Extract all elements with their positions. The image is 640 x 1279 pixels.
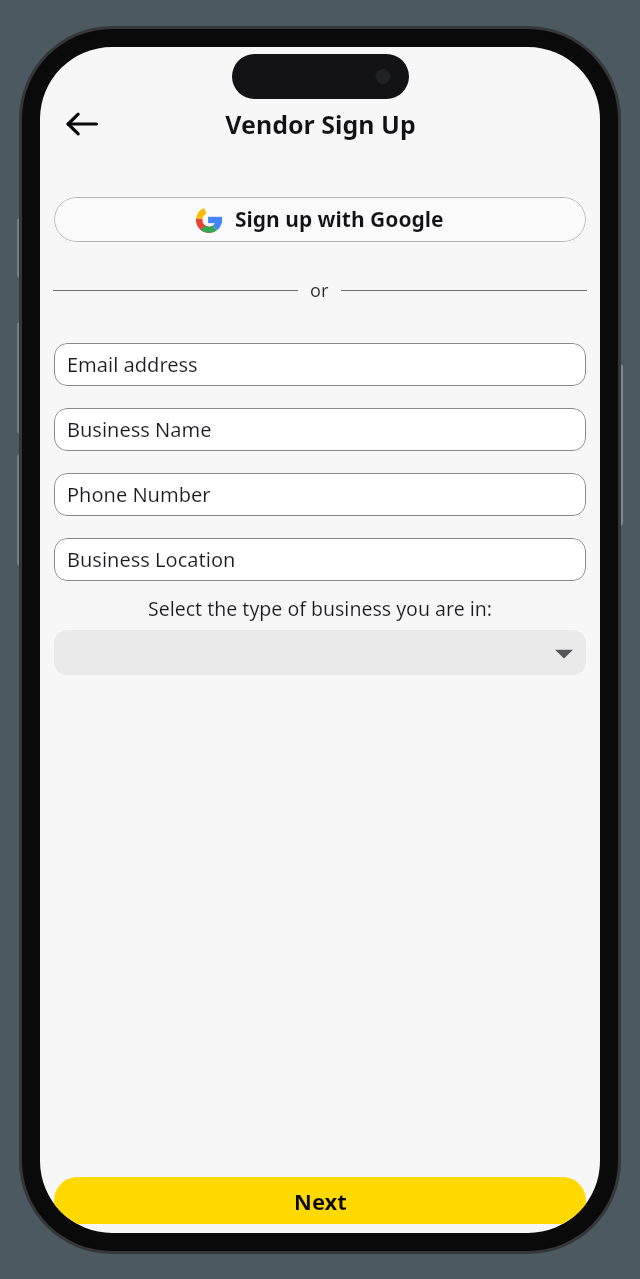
button[interactable]: Select the type of business — [54, 630, 586, 675]
button[interactable]: Back — [58, 100, 106, 148]
staticText: Next — [294, 1186, 347, 1216]
button[interactable]: Phone Number — [54, 473, 586, 516]
button[interactable]: Business Name — [54, 408, 586, 451]
button[interactable]: Business Location — [54, 538, 586, 581]
staticText: Select the type of business you are in: — [40, 595, 600, 622]
staticText: Vendor Sign Up — [225, 107, 416, 141]
button[interactable]: Sign up with Google — [54, 197, 586, 242]
staticText: Phone Number — [67, 481, 211, 508]
button[interactable]: Next — [54, 1177, 586, 1224]
staticText: Business Name — [67, 416, 212, 443]
staticText: Email address — [67, 351, 198, 378]
button[interactable]: Email address — [54, 343, 586, 386]
staticText: Sign up with Google — [235, 205, 444, 234]
staticText: or — [310, 278, 329, 303]
staticText: Business Location — [67, 546, 236, 573]
